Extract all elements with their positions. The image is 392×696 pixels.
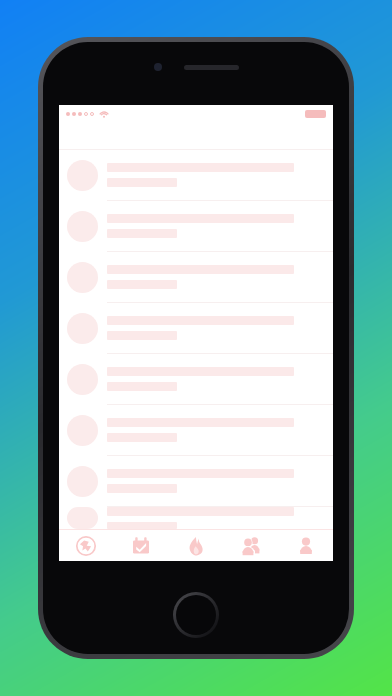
- button[interactable]: [59, 456, 333, 507]
- button[interactable]: Friends: [223, 530, 278, 561]
- button[interactable]: Events: [113, 530, 168, 561]
- button[interactable]: [59, 201, 333, 252]
- button[interactable]: [59, 150, 333, 201]
- button[interactable]: Trending: [168, 530, 223, 561]
- button[interactable]: [59, 252, 333, 303]
- button[interactable]: [59, 507, 333, 529]
- button[interactable]: Discover: [59, 530, 113, 561]
- button[interactable]: Profile: [278, 530, 333, 561]
- button[interactable]: [59, 405, 333, 456]
- button[interactable]: Home: [173, 592, 219, 638]
- button[interactable]: [59, 303, 333, 354]
- button[interactable]: [59, 354, 333, 405]
